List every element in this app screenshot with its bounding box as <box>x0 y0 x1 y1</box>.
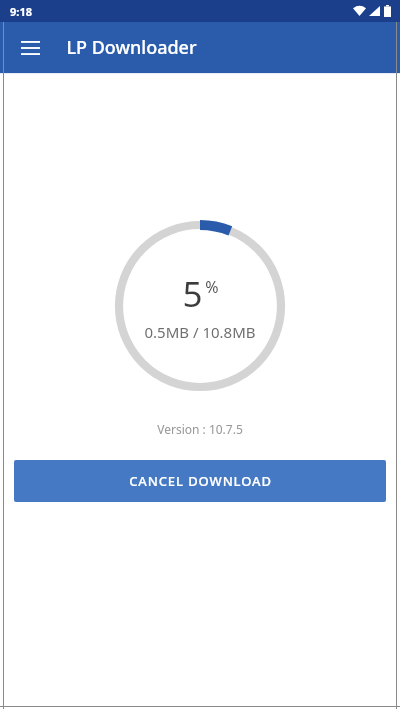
staticText: CANCEL DOWNLOAD <box>129 472 272 490</box>
staticText: % <box>205 276 219 298</box>
staticText: LP Downloader <box>66 35 197 60</box>
button[interactable]: Open navigation menu <box>10 28 50 68</box>
staticText: Version : 10.7.5 <box>157 421 243 437</box>
staticText: 5 <box>182 270 203 318</box>
button[interactable]: CANCEL DOWNLOAD <box>14 460 386 502</box>
staticText: 0.5MB / 10.8MB <box>144 322 256 342</box>
staticText: 9:18 <box>10 4 32 19</box>
